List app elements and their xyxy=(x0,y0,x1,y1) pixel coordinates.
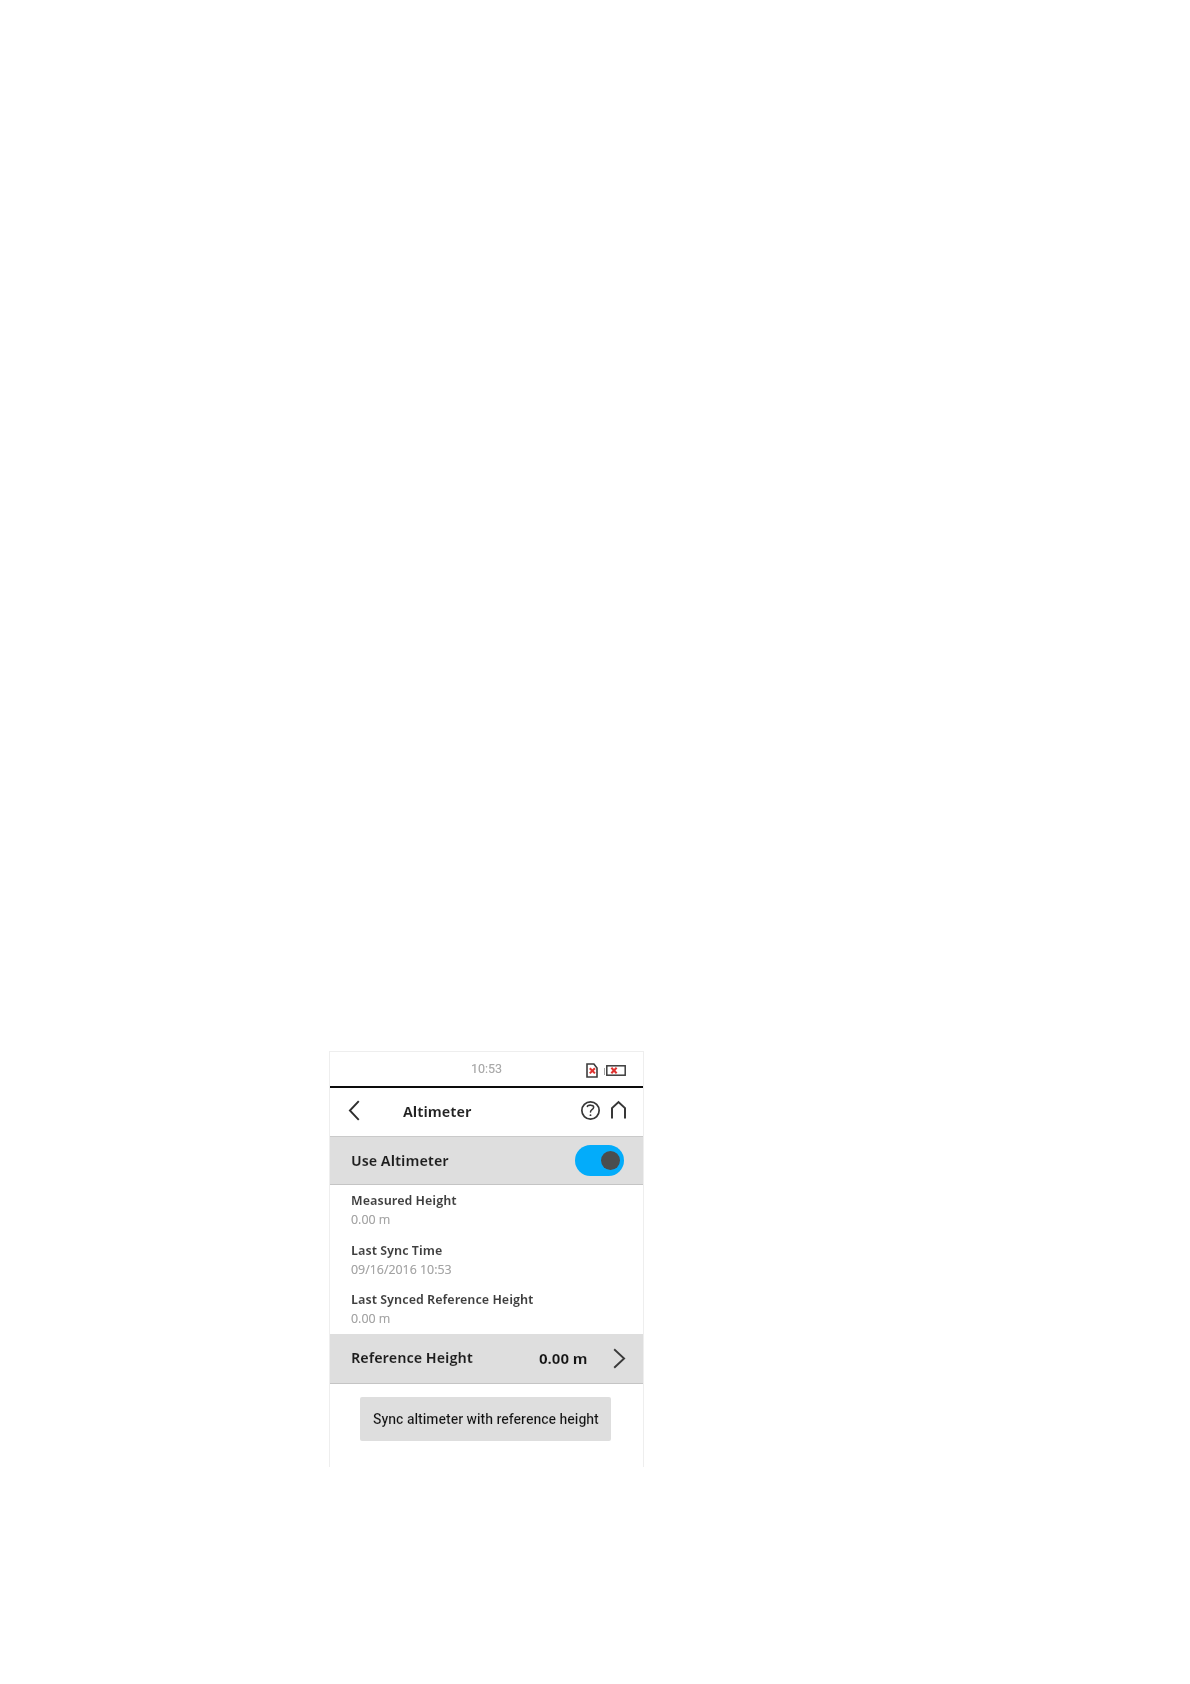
staticText: 09/16/2016 10:53 xyxy=(351,1261,452,1278)
button[interactable]: Reference Height xyxy=(330,1334,643,1384)
staticText: Last Sync Time xyxy=(351,1242,443,1259)
staticText: Use Altimeter xyxy=(351,1151,449,1170)
staticText: 0.00 m xyxy=(539,1348,588,1368)
button[interactable]: Sync altimeter with reference height xyxy=(360,1397,611,1441)
staticText: Measured Height xyxy=(351,1192,457,1209)
staticText: Sync altimeter with reference height xyxy=(373,1411,599,1427)
button[interactable]: Use Altimeter xyxy=(330,1137,643,1185)
staticText: Reference Height xyxy=(351,1348,473,1367)
button[interactable]: Use Altimeter toggle xyxy=(575,1145,624,1176)
staticText: 0.00 m xyxy=(351,1310,391,1327)
staticText: Last Synced Reference Height xyxy=(351,1291,534,1308)
staticText: 0.00 m xyxy=(351,1211,391,1228)
button[interactable]: Back xyxy=(341,1098,367,1124)
staticText: 10:53 xyxy=(471,1061,503,1076)
button[interactable]: Home xyxy=(602,1088,638,1137)
staticText: Altimeter xyxy=(403,1102,472,1121)
button[interactable]: Help xyxy=(570,1088,606,1137)
